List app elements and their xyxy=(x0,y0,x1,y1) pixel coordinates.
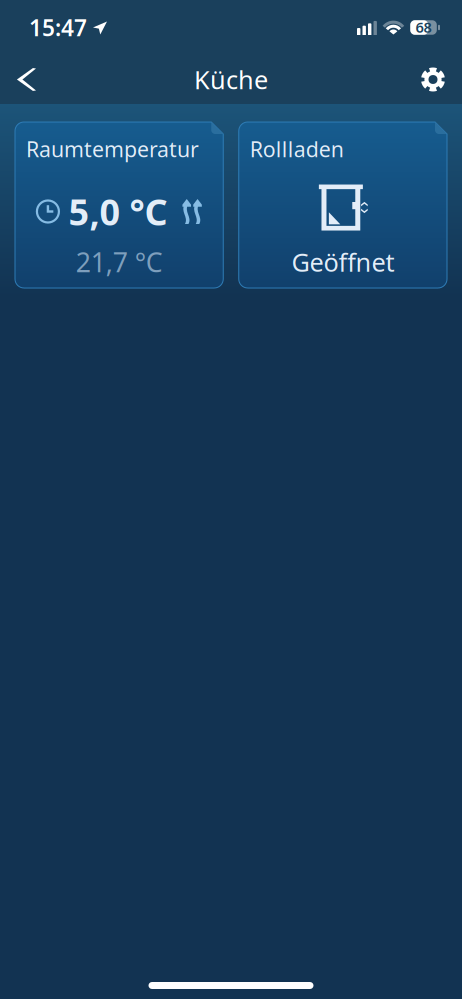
button[interactable]: Raumtemperatur xyxy=(15,122,223,288)
staticText: 5,0 °C xyxy=(68,188,167,235)
button[interactable]: Rollladen xyxy=(239,122,447,288)
staticText: Geöffnet xyxy=(291,245,394,279)
button[interactable]: Back xyxy=(8,65,48,93)
staticText: 21,7 °C xyxy=(76,244,163,280)
staticText: Küche xyxy=(194,63,268,96)
staticText: 15:47 xyxy=(29,12,87,42)
staticText: Raumtemperatur xyxy=(26,135,199,163)
staticText: 68 xyxy=(416,17,432,37)
staticText: Rollladen xyxy=(250,135,344,163)
button[interactable]: Settings xyxy=(412,66,454,92)
